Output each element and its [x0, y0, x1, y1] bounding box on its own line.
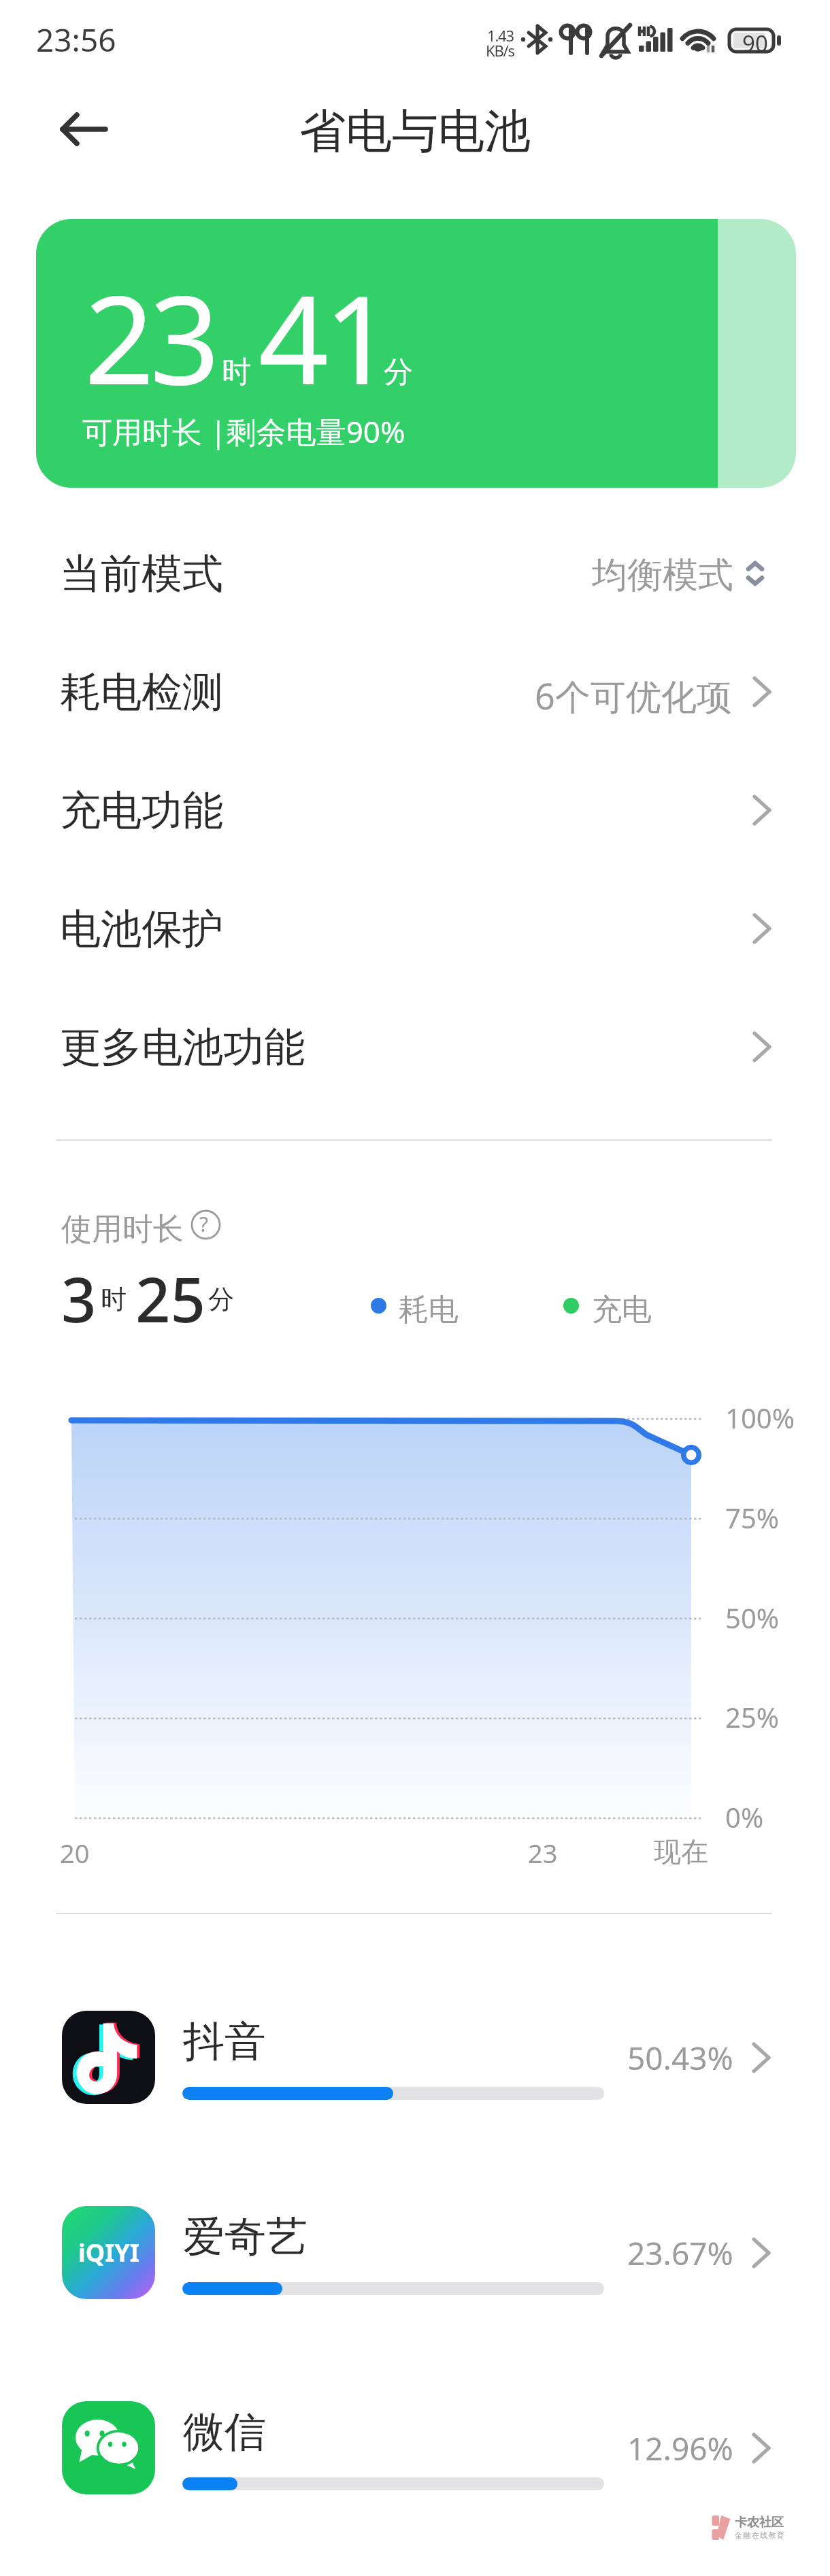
staticText: 50%	[725, 1599, 779, 1636]
staticText: 微信	[183, 2406, 266, 2458]
staticText: 当前模式	[60, 548, 223, 600]
staticText: 充电	[592, 1291, 652, 1328]
staticText: 100%	[725, 1399, 795, 1436]
staticText: 可用时长 |剩余电量90%	[82, 411, 405, 452]
staticText: 抖音	[183, 2015, 266, 2068]
staticText: 均衡模式	[592, 553, 733, 598]
staticText: 分	[208, 1283, 234, 1316]
staticText: 0%	[725, 1799, 764, 1835]
staticText: 20	[60, 1835, 90, 1871]
button[interactable]: 更多电池功能	[0, 988, 830, 1106]
button[interactable]: 可用时长 23时41分，剩余电量90%	[36, 219, 796, 488]
staticText: 更多电池功能	[60, 1022, 305, 1073]
staticText: 时	[101, 1283, 127, 1316]
staticText: 充电功能	[60, 785, 223, 837]
button[interactable]: 微信 12.96%	[0, 2351, 830, 2545]
staticText: 金融在线教育	[735, 2530, 786, 2540]
staticText: 12.96%	[627, 2427, 733, 2470]
staticText: 省电与电池	[299, 103, 531, 161]
staticText: 耗电	[399, 1291, 459, 1328]
staticText: 6个可优化项	[535, 671, 732, 720]
staticText: 爱奇艺	[183, 2211, 308, 2263]
staticText: 3	[61, 1257, 97, 1341]
staticText: 23	[84, 254, 215, 420]
staticText: 75%	[725, 1499, 779, 1536]
staticText: 1.43	[487, 25, 514, 46]
staticText: 电池保护	[60, 903, 223, 955]
staticText: 50.43%	[627, 2037, 733, 2079]
staticText: KB/s	[486, 40, 514, 61]
staticText: ?	[199, 1210, 209, 1238]
staticText: 现在	[654, 1835, 708, 1869]
button[interactable]: Back	[41, 99, 128, 160]
button[interactable]: 抖音 50.43%	[0, 1960, 830, 2155]
staticText: 卡农社区	[735, 2515, 784, 2530]
button[interactable]: 电池保护	[0, 869, 830, 988]
staticText: 25	[135, 1257, 205, 1341]
staticText: 25%	[725, 1699, 779, 1735]
button[interactable]: 耗电检测6个可优化项	[0, 633, 830, 751]
staticText: 23	[528, 1835, 558, 1871]
staticText: 23.67%	[627, 2232, 733, 2275]
staticText: iQIYI	[78, 2236, 139, 2269]
button[interactable]: 爱奇艺 23.67%	[0, 2156, 830, 2350]
button[interactable]: 充电功能	[0, 751, 830, 869]
staticText: 90	[742, 28, 768, 58]
staticText: 分	[384, 354, 413, 390]
staticText: 时	[222, 354, 251, 390]
staticText: 使用时长	[61, 1210, 184, 1249]
staticText: 23:56	[36, 18, 116, 61]
button[interactable]: 使用时长说明	[190, 1209, 221, 1240]
staticText: 41	[259, 254, 389, 420]
staticText: 耗电检测	[60, 667, 223, 718]
button[interactable]: 当前模式均衡模式	[0, 514, 830, 633]
